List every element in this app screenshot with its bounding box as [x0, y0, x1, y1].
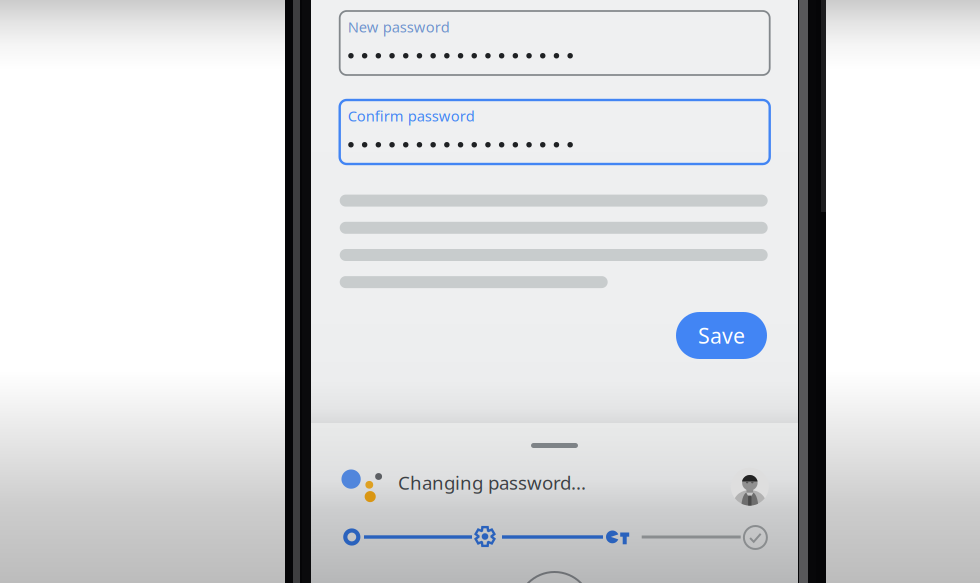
button[interactable]: Save	[676, 312, 767, 359]
staticText: Confirm password	[348, 106, 475, 125]
staticText: Changing password...	[398, 470, 586, 495]
staticText: New password	[348, 17, 450, 36]
staticText: Save	[698, 321, 745, 350]
